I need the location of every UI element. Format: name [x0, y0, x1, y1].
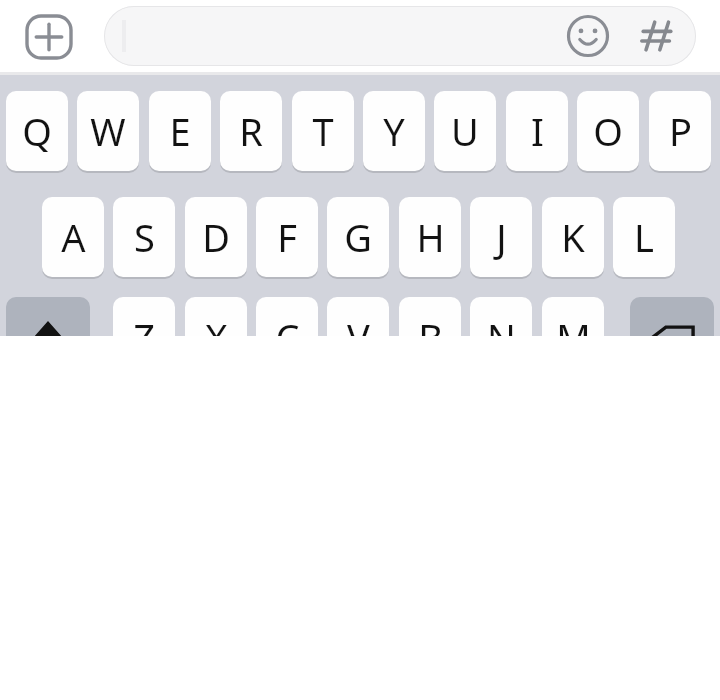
button[interactable]: R: [220, 91, 282, 171]
button[interactable]: B: [399, 297, 461, 336]
staticText: Z: [133, 311, 155, 336]
staticText: H: [416, 211, 445, 263]
staticText: I: [531, 105, 544, 157]
staticText: R: [239, 105, 263, 157]
staticText: N: [487, 311, 516, 336]
staticText: V: [347, 311, 370, 336]
staticText: M: [556, 311, 591, 336]
button[interactable]: M: [542, 297, 604, 336]
button[interactable]: F: [256, 197, 318, 277]
button[interactable]: U: [434, 91, 496, 171]
staticText: W: [90, 105, 126, 157]
staticText: J: [496, 211, 507, 263]
button[interactable]: N: [470, 297, 532, 336]
button[interactable]: P: [649, 91, 711, 171]
button[interactable]: D: [185, 197, 247, 277]
staticText: C: [275, 311, 300, 336]
button[interactable]: W: [77, 91, 139, 171]
staticText: U: [451, 105, 479, 157]
staticText: G: [344, 211, 372, 263]
staticText: T: [312, 105, 334, 157]
button[interactable]: Q: [6, 91, 68, 171]
button[interactable]: Z: [113, 297, 175, 336]
staticText: F: [277, 211, 297, 263]
button[interactable]: Hashtag: [634, 13, 680, 59]
staticText: X: [205, 311, 228, 336]
staticText: Y: [383, 105, 405, 157]
button[interactable]: G: [327, 197, 389, 277]
button[interactable]: T: [292, 91, 354, 171]
button[interactable]: E: [149, 91, 211, 171]
staticText: S: [134, 211, 155, 263]
button[interactable]: S: [113, 197, 175, 277]
staticText: E: [169, 105, 191, 157]
staticText: L: [634, 211, 654, 263]
button[interactable]: I: [506, 91, 568, 171]
staticText: Q: [22, 105, 52, 157]
button[interactable]: Emoji: [566, 14, 610, 58]
staticText: D: [202, 211, 230, 263]
button[interactable]: A: [42, 197, 104, 277]
button[interactable]: V: [327, 297, 389, 336]
button[interactable]: H: [399, 197, 461, 277]
button[interactable]: O: [577, 91, 639, 171]
button[interactable]: X: [185, 297, 247, 336]
button[interactable]: L: [613, 197, 675, 277]
button[interactable]: J: [470, 197, 532, 277]
staticText: O: [593, 105, 623, 157]
staticText: P: [669, 105, 692, 157]
button[interactable]: Backspace: [630, 297, 714, 336]
button[interactable]: Emoji: [104, 6, 696, 66]
staticText: A: [61, 211, 86, 263]
button[interactable]: Shift: [6, 297, 90, 336]
button[interactable]: K: [542, 197, 604, 277]
staticText: B: [418, 311, 443, 336]
button[interactable]: Add attachment: [25, 14, 73, 60]
button[interactable]: Y: [363, 91, 425, 171]
button[interactable]: C: [256, 297, 318, 336]
staticText: K: [561, 211, 585, 263]
